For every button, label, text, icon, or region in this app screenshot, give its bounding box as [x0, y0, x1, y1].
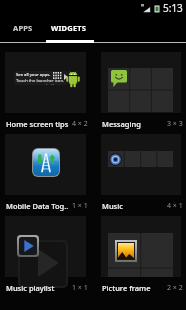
- staticText: Picture frame: [102, 283, 167, 293]
- staticText: Touch the launcher icon.: [16, 78, 65, 84]
- button[interactable]: See all your apps.: [0, 52, 93, 134]
- staticText: WIDGETS: [51, 23, 87, 33]
- staticText: Mobile Data Tog..: [6, 201, 72, 211]
- staticText: 1 of 5: [46, 84, 55, 85]
- staticText: 5:13: [163, 1, 183, 15]
- button[interactable]: WIDGETS: [46, 16, 92, 43]
- staticText: APPS: [13, 23, 33, 33]
- staticText: 2 × 2: [167, 283, 183, 293]
- button[interactable]: Picture frame: [93, 216, 186, 298]
- button[interactable]: Music playlist: [0, 216, 93, 298]
- staticText: Music: [102, 201, 167, 211]
- staticText: 3 × 3: [167, 119, 183, 129]
- staticText: 4 × 1: [167, 201, 183, 211]
- button[interactable]: Music: [93, 134, 186, 216]
- button[interactable]: APPS: [0, 16, 46, 43]
- staticText: 4 × 2: [72, 119, 88, 129]
- button[interactable]: Mobile Data Tog..: [0, 134, 93, 216]
- staticText: 1 × 1: [72, 201, 88, 211]
- staticText: Messaging: [102, 119, 167, 129]
- staticText: See all your apps.: [16, 72, 51, 78]
- button[interactable]: Messaging: [93, 52, 186, 134]
- staticText: Home screen tips: [6, 119, 72, 129]
- staticText: Music playlist: [6, 283, 72, 293]
- staticText: 1 × 1: [72, 283, 88, 293]
